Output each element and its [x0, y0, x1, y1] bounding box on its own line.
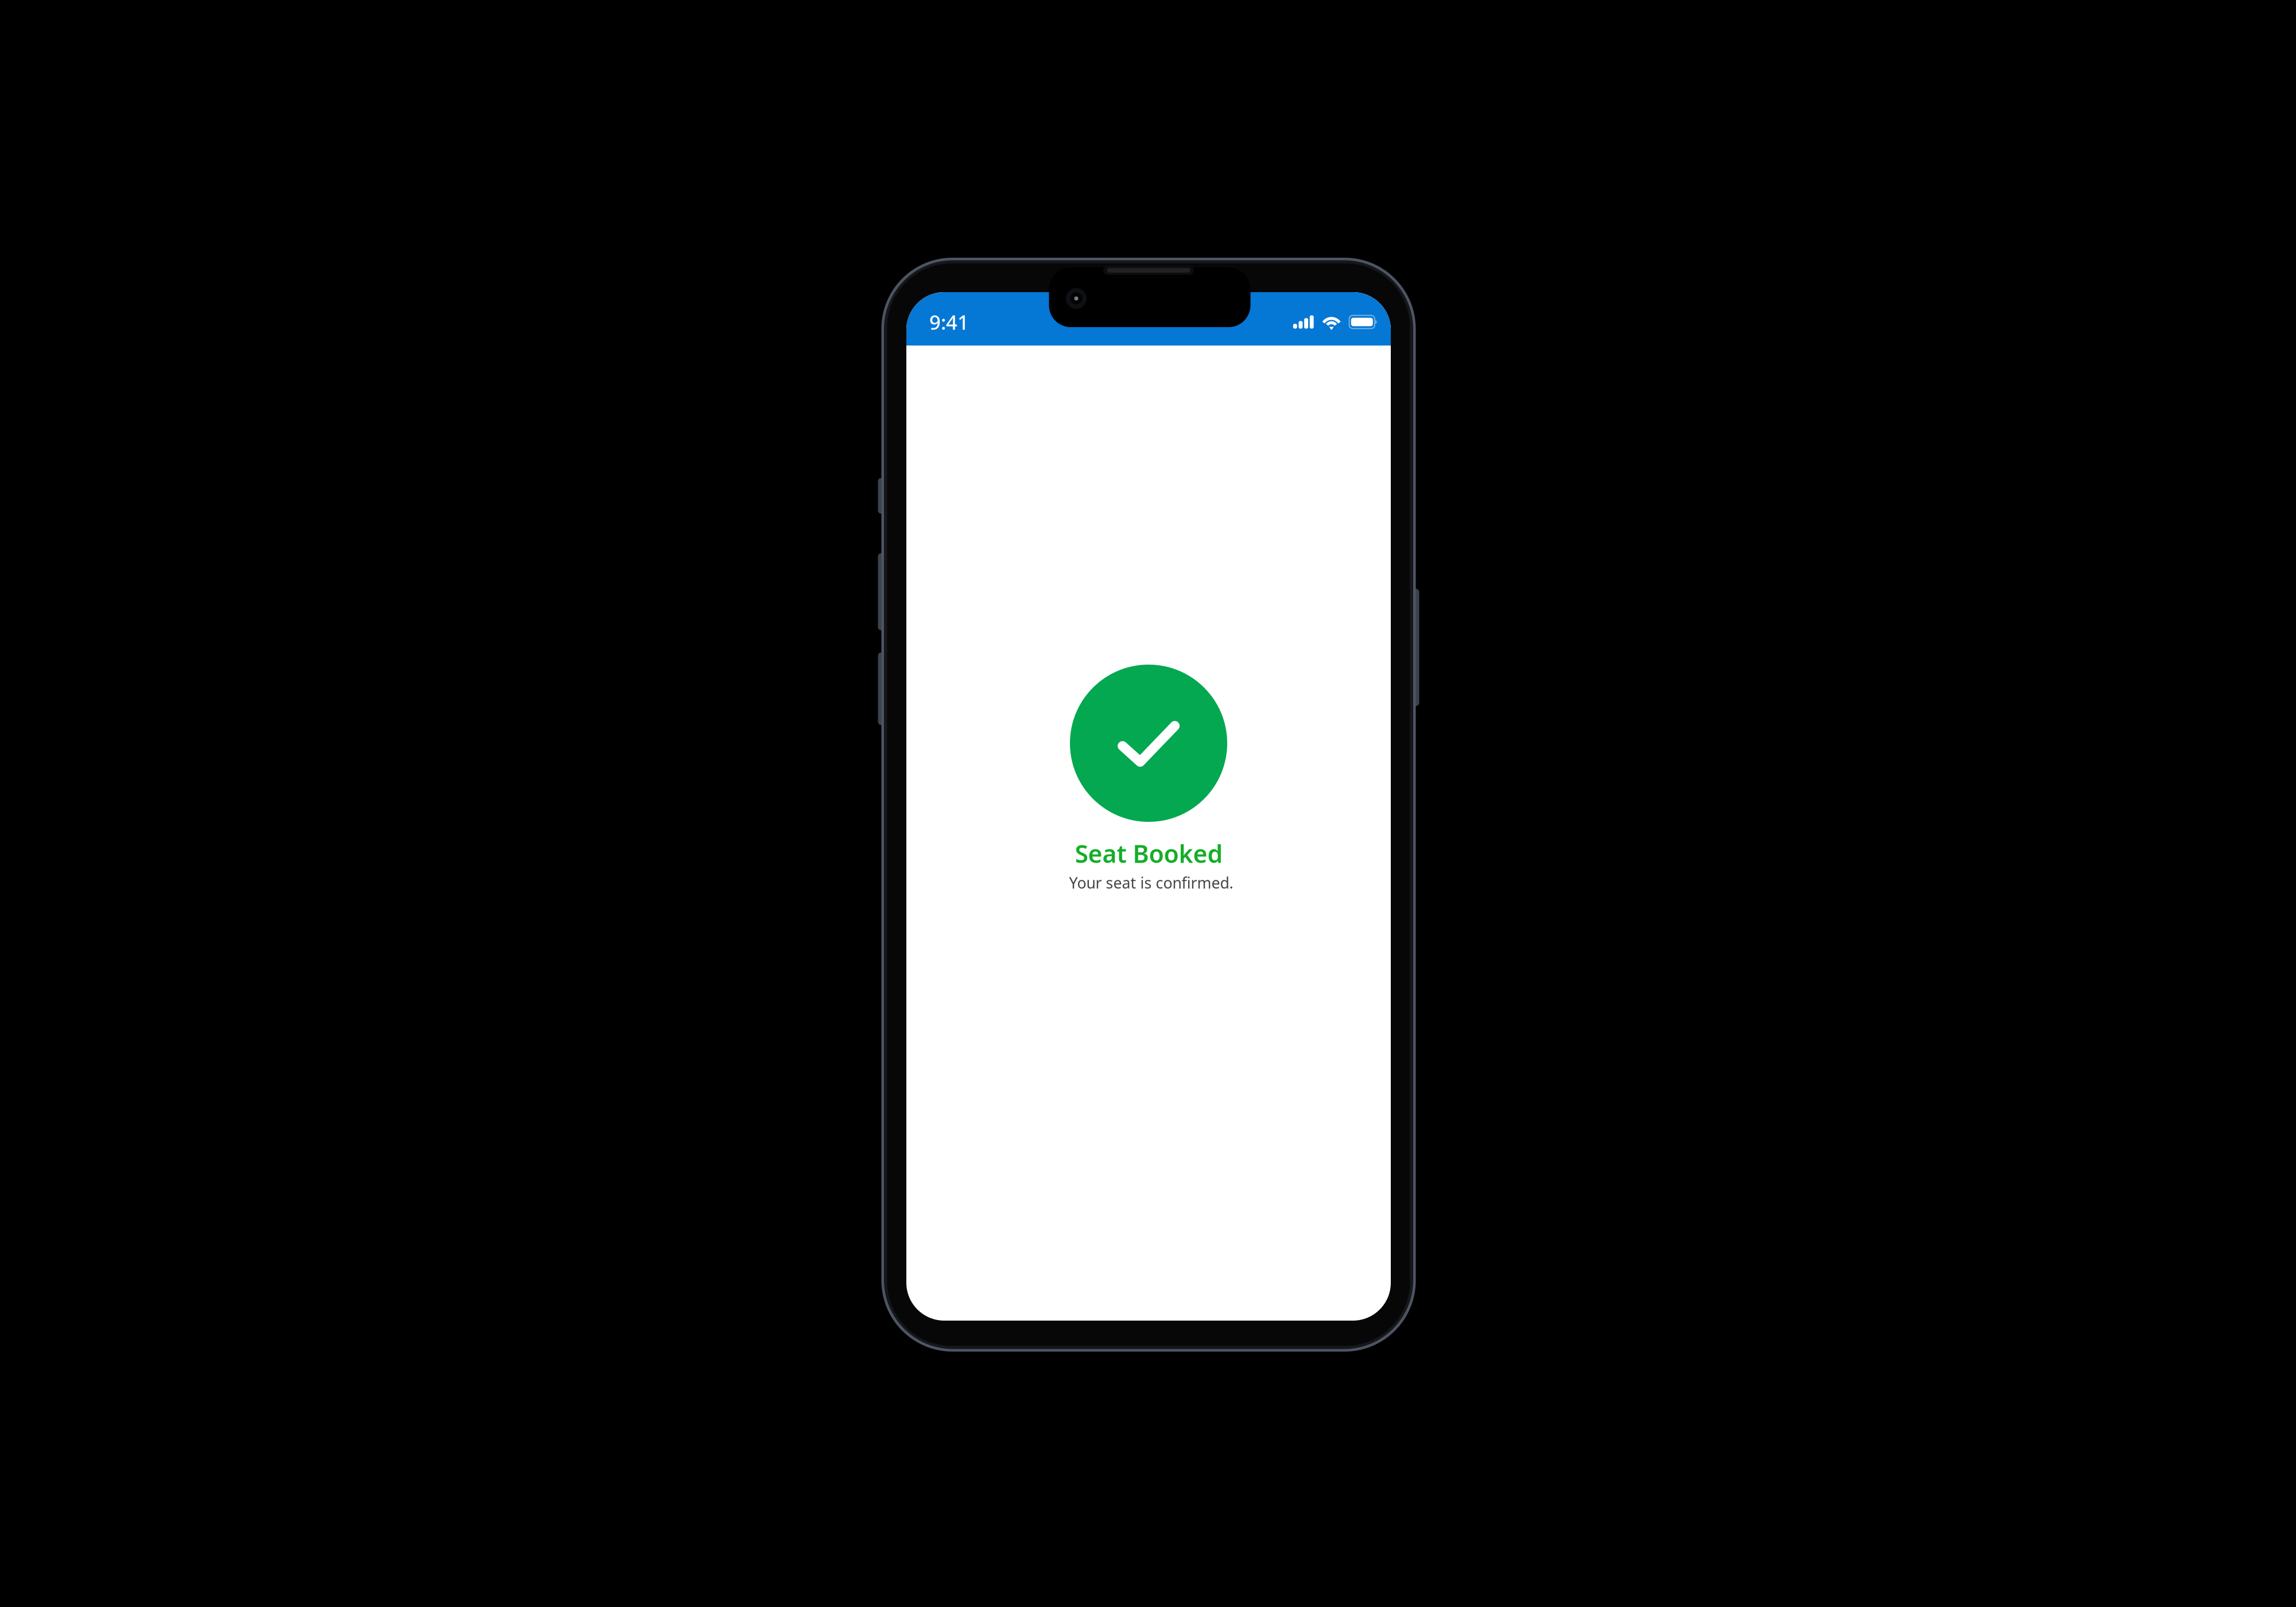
button[interactable]: Booking confirmed — [1070, 665, 1227, 822]
staticText: Your seat is confirmed. — [1069, 873, 1233, 893]
staticText: Seat Booked — [1075, 837, 1223, 870]
staticText: 9:41 — [929, 309, 969, 335]
